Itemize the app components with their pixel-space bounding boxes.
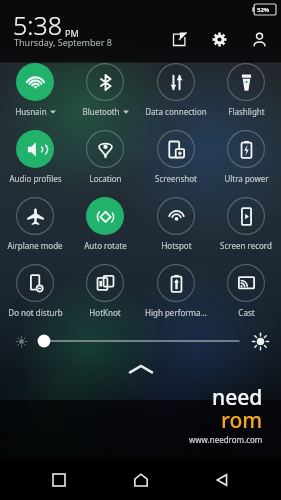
- staticText: need: [212, 383, 263, 412]
- button[interactable]: Bluetooth: [70, 58, 140, 117]
- staticText: Husnain: [15, 106, 47, 117]
- button[interactable]: Cast: [211, 259, 281, 318]
- staticText: 52%: [257, 6, 270, 14]
- staticText: HotKnot: [89, 307, 121, 318]
- button[interactable]: Auto rotate: [70, 192, 140, 251]
- staticText: Bluetooth: [82, 106, 120, 117]
- staticText: Data connection: [145, 106, 207, 117]
- button[interactable]: Flashlight: [211, 58, 281, 117]
- staticText: Screen record: [220, 240, 272, 251]
- button[interactable]: Ultra power: [211, 125, 281, 184]
- staticText: Audio profiles: [9, 173, 62, 184]
- button[interactable]: Husnain: [0, 58, 70, 117]
- staticText: Thursday, September 8: [14, 36, 112, 48]
- staticText: PM: [65, 27, 79, 39]
- button[interactable]: Back: [199, 460, 245, 500]
- button[interactable]: User: [247, 27, 271, 51]
- button[interactable]: Airplane mode: [0, 192, 70, 251]
- staticText: Cast: [238, 307, 255, 318]
- staticText: rom: [221, 406, 263, 435]
- button[interactable]: Recents: [36, 460, 82, 500]
- staticText: Ultra power: [224, 173, 269, 184]
- staticText: Flashlight: [228, 106, 265, 117]
- button[interactable]: Audio profiles: [0, 125, 70, 184]
- button[interactable]: Increase brightness: [247, 328, 273, 354]
- button[interactable]: Location: [70, 125, 140, 184]
- button[interactable]: Brightness: [34, 328, 247, 354]
- button[interactable]: Screen record: [211, 192, 281, 251]
- button[interactable]: Collapse: [0, 356, 281, 382]
- button[interactable]: High performa...: [141, 259, 211, 318]
- button[interactable]: Do not disturb: [0, 259, 70, 318]
- staticText: Do not disturb: [8, 307, 63, 318]
- button[interactable]: HotKnot: [70, 259, 140, 318]
- staticText: High performa...: [145, 307, 207, 318]
- staticText: Airplane mode: [7, 240, 63, 251]
- button[interactable]: Hotspot: [141, 192, 211, 251]
- button[interactable]: Edit: [167, 27, 191, 51]
- staticText: 5:38: [13, 8, 62, 42]
- button[interactable]: Home: [118, 460, 164, 500]
- button[interactable]: Screenshot: [141, 125, 211, 184]
- button[interactable]: Decrease brightness: [8, 328, 34, 354]
- staticText: www.needrom.com: [189, 434, 263, 445]
- staticText: Screenshot: [155, 173, 197, 184]
- staticText: Auto rotate: [84, 240, 127, 251]
- staticText: Location: [89, 173, 122, 184]
- button[interactable]: Data connection: [141, 58, 211, 117]
- staticText: Hotspot: [161, 240, 192, 251]
- button[interactable]: Settings: [207, 27, 231, 51]
